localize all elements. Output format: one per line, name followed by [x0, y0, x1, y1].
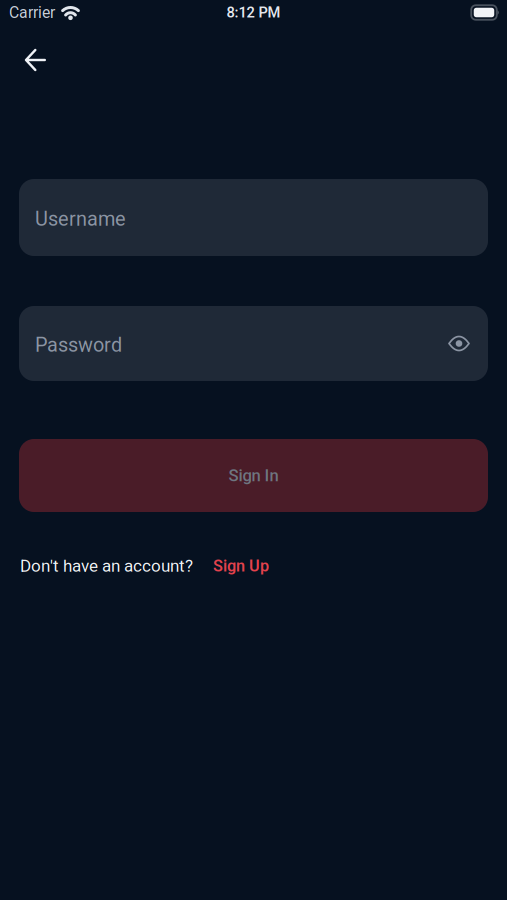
staticText: 8:12 PM	[226, 4, 280, 21]
staticText: Username	[35, 207, 126, 231]
button[interactable]: Username	[19, 179, 488, 256]
button[interactable]: Sign Up	[213, 556, 269, 576]
staticText: Password	[35, 333, 122, 357]
button[interactable]: Show password	[448, 336, 470, 351]
button[interactable]: Back	[25, 49, 46, 71]
staticText: Carrier	[9, 3, 55, 22]
button[interactable]: Sign In	[19, 439, 488, 512]
staticText: Don't have an account?	[20, 556, 193, 576]
button[interactable]: Password	[19, 306, 488, 381]
staticText: Sign Up	[213, 556, 269, 576]
staticText: Sign In	[228, 466, 278, 485]
